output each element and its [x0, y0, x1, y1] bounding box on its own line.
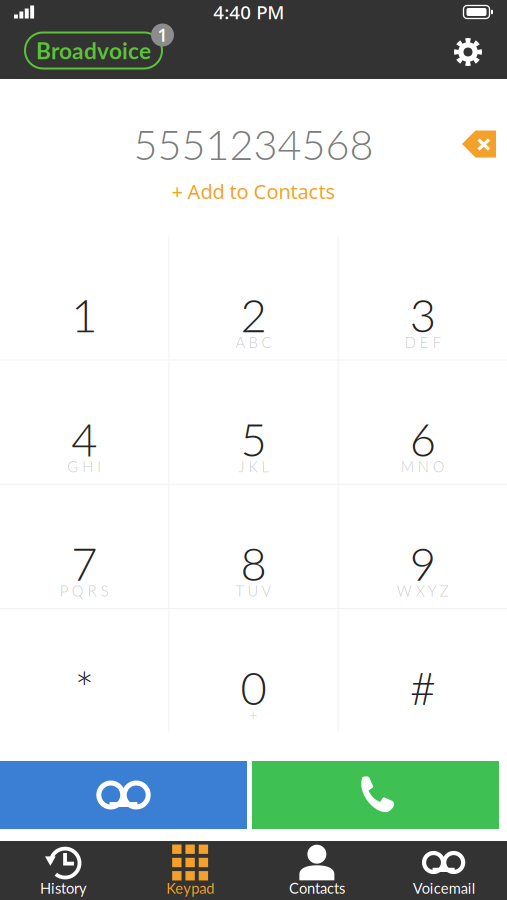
staticText: D E F [405, 333, 441, 351]
staticText: 1 [157, 23, 167, 46]
staticText: G H I [67, 458, 101, 475]
staticText: 4 [71, 412, 97, 466]
staticText: 9 [410, 536, 436, 590]
staticText: 6 [410, 412, 436, 466]
staticText: 2 [240, 288, 266, 342]
staticText: Keypad [166, 879, 214, 897]
staticText: 7 [71, 536, 97, 590]
staticText: Broadvoice [36, 37, 151, 64]
button[interactable]: 6 [339, 360, 507, 484]
button[interactable]: 5 [169, 360, 338, 484]
staticText: P Q R S [60, 582, 109, 600]
staticText: W X Y Z [397, 582, 449, 600]
staticText: 1 [71, 288, 97, 342]
staticText: Contacts [289, 879, 345, 897]
staticText: + Add to Contacts [171, 178, 335, 205]
button[interactable]: 4 [0, 360, 168, 484]
staticText: * [75, 660, 94, 715]
staticText: 5551234568 [133, 119, 373, 169]
button[interactable]: History [0, 841, 127, 900]
staticText: Voicemail [413, 879, 475, 897]
button[interactable]: 3 [339, 236, 507, 359]
button[interactable]: + Add to Contacts [161, 175, 345, 208]
button[interactable]: Call [252, 761, 499, 829]
staticText: 3 [410, 288, 436, 342]
button[interactable]: Voicemail [0, 761, 247, 829]
button[interactable]: 9 [339, 485, 507, 608]
button[interactable]: * [0, 609, 168, 732]
button[interactable]: Keypad [127, 841, 254, 900]
button[interactable]: Settings [444, 27, 492, 67]
staticText: A B C [235, 333, 271, 351]
staticText: 8 [240, 536, 266, 590]
staticText: 4:40 PM [213, 0, 284, 24]
staticText: + [249, 706, 258, 724]
button[interactable]: Voicemail [380, 841, 507, 900]
button[interactable]: 0 [169, 609, 338, 732]
button[interactable]: Delete [456, 124, 502, 163]
staticText: History [40, 879, 87, 897]
staticText: J K L [238, 458, 268, 475]
button[interactable]: 8 [169, 485, 338, 608]
staticText: # [410, 660, 436, 715]
button[interactable]: 2 [169, 236, 338, 359]
staticText: 0 [240, 660, 266, 715]
staticText: T U V [235, 582, 271, 600]
staticText: 5 [240, 412, 266, 466]
staticText: M N O [401, 458, 445, 475]
button[interactable]: 1 [0, 236, 168, 359]
button[interactable]: # [339, 609, 507, 732]
button[interactable]: Contacts [253, 841, 380, 900]
button[interactable]: 7 [0, 485, 168, 608]
button[interactable]: Broadvoice [25, 23, 174, 70]
